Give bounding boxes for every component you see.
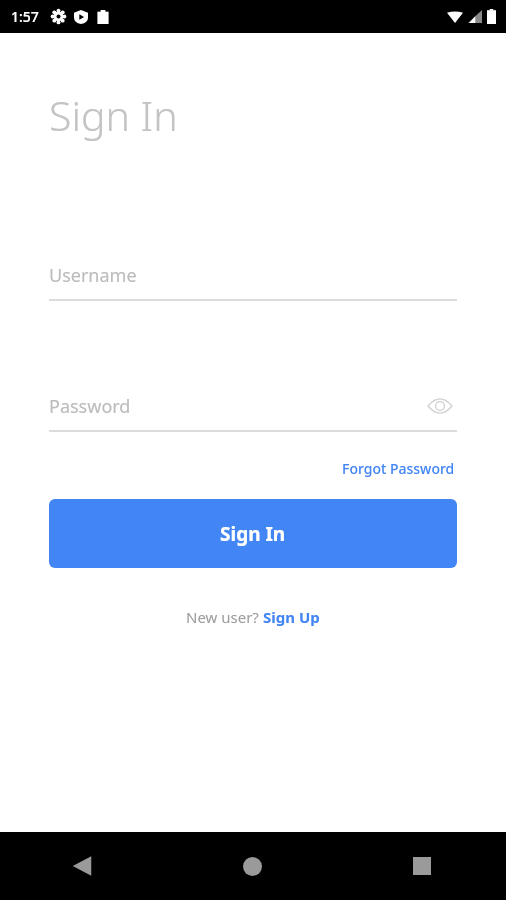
staticText: 1:57 xyxy=(11,7,39,26)
button[interactable]: Show password xyxy=(423,389,457,423)
button[interactable]: Forgot Password xyxy=(340,457,457,480)
button[interactable]: Sign Up xyxy=(263,607,320,627)
button[interactable]: Password xyxy=(49,382,457,430)
staticText: Sign Up xyxy=(263,607,320,627)
staticText: Password xyxy=(49,394,131,419)
staticText: Sign In xyxy=(49,87,178,143)
staticText: Sign In xyxy=(220,521,286,547)
button[interactable]: Username xyxy=(49,251,457,299)
button[interactable]: Back xyxy=(0,832,168,900)
button[interactable]: Recents xyxy=(337,832,506,900)
staticText: New user? xyxy=(186,607,263,627)
staticText: Username xyxy=(49,263,137,288)
button[interactable]: Home xyxy=(168,832,337,900)
button[interactable]: Sign In xyxy=(49,499,457,568)
staticText: Forgot Password xyxy=(342,459,455,478)
